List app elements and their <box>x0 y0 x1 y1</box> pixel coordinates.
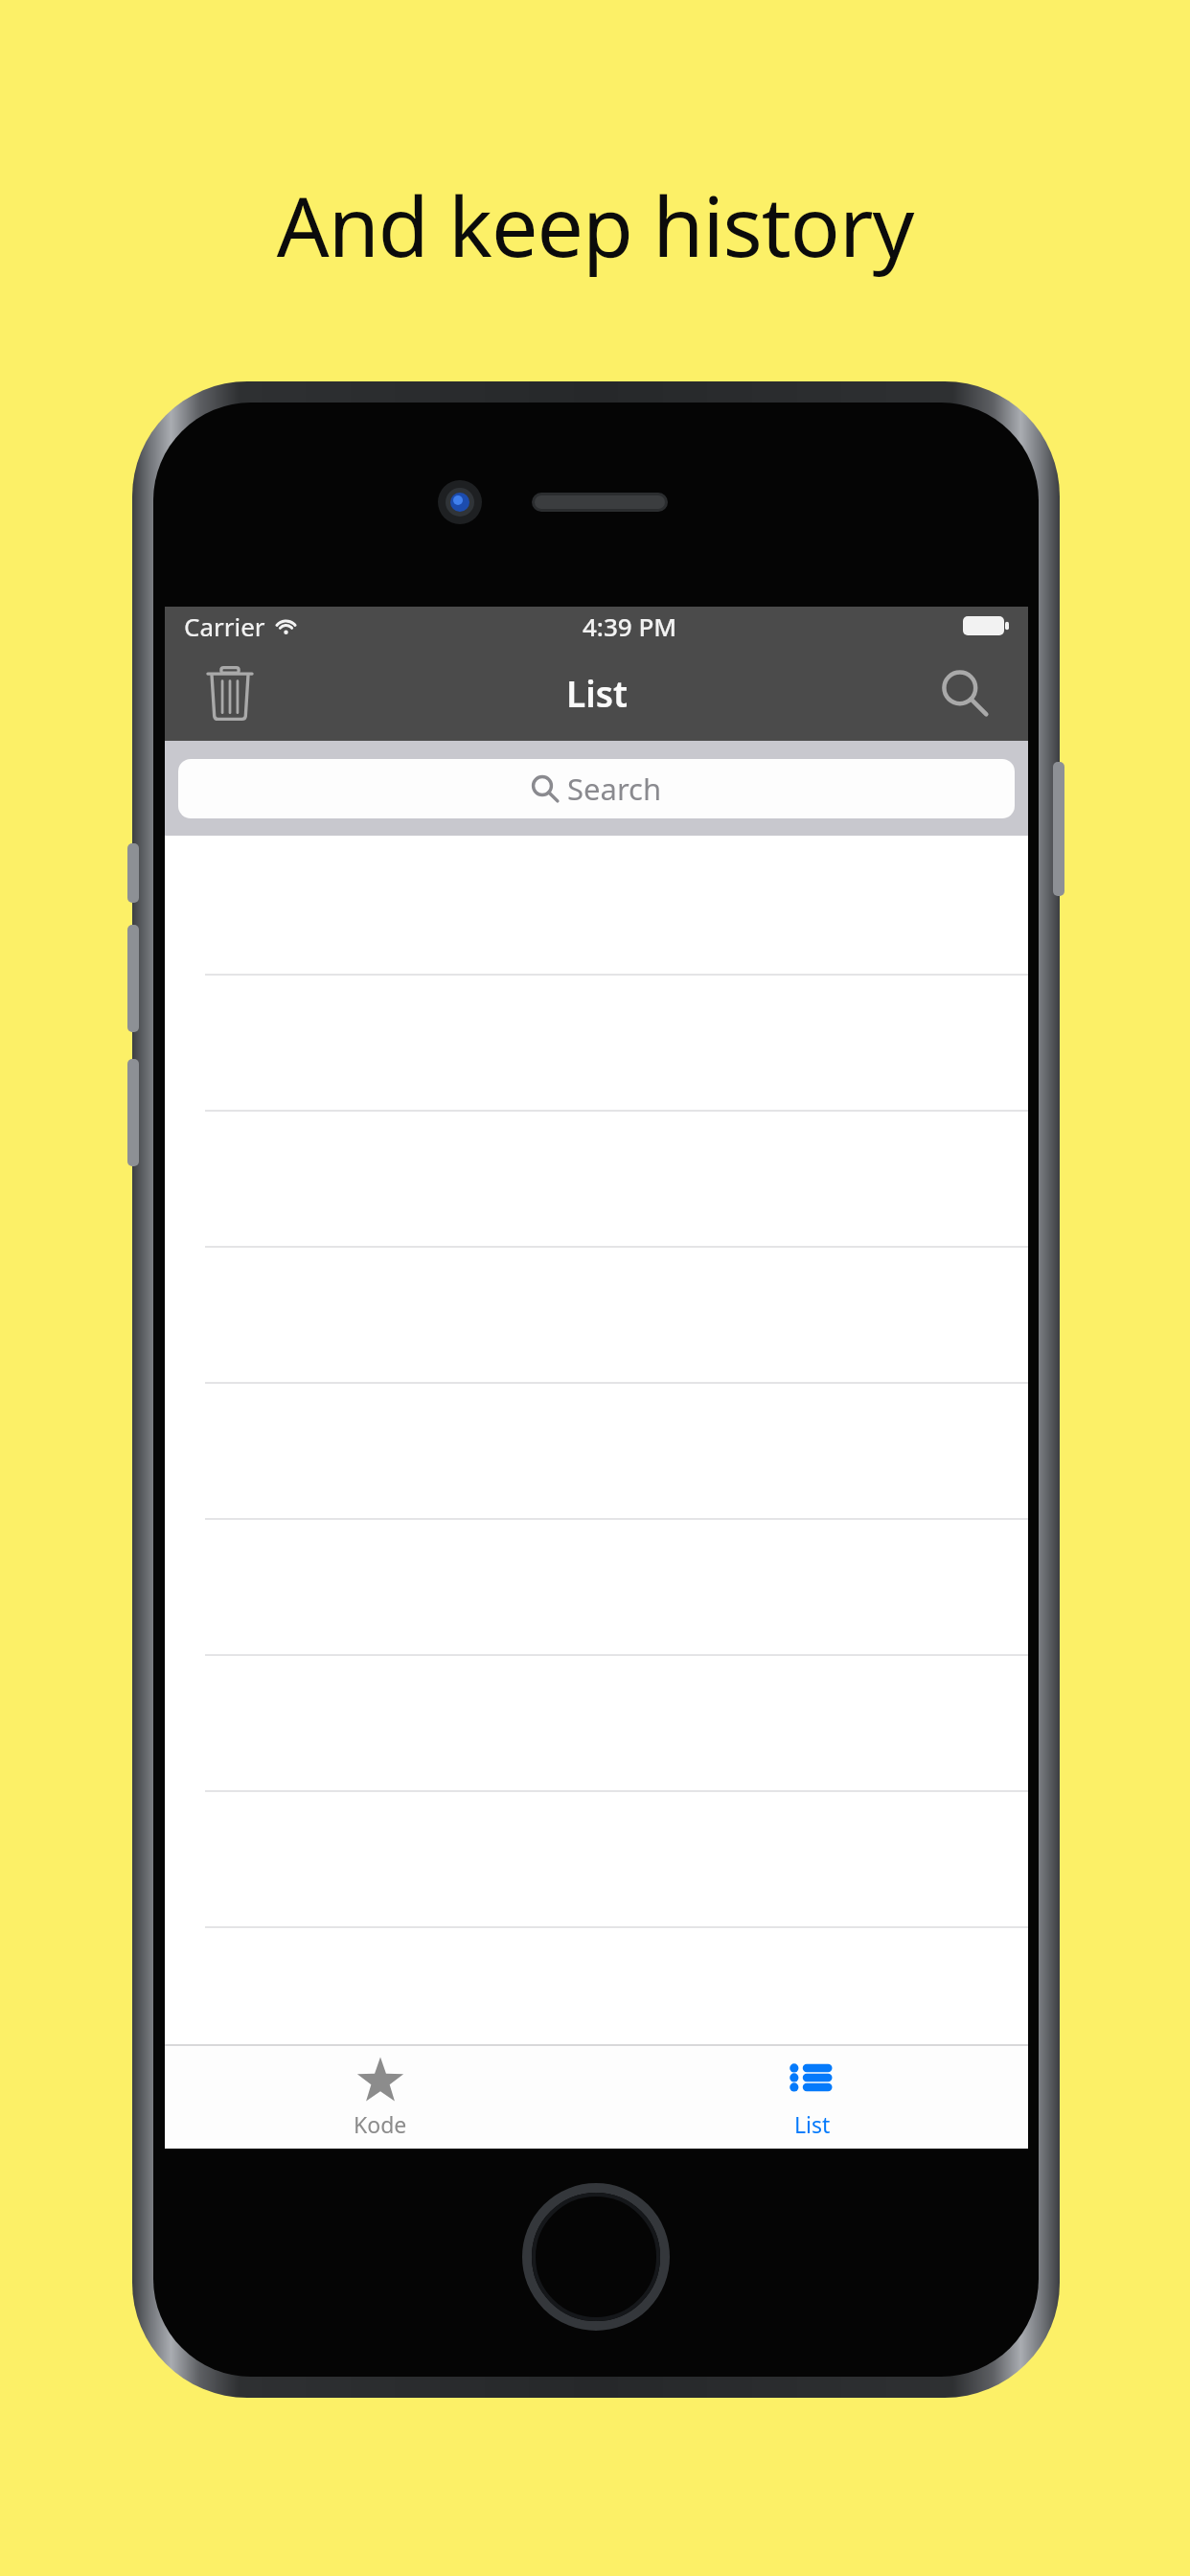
staticText: Search <box>567 769 662 809</box>
staticText: 4:39 PM <box>583 609 677 643</box>
staticText: List <box>794 2109 831 2139</box>
button[interactable]: Search <box>178 759 1015 818</box>
button[interactable]: Search <box>923 651 1007 735</box>
staticText: And keep history <box>0 169 1190 281</box>
staticText: Kode <box>354 2109 407 2139</box>
button[interactable]: List <box>596 2046 1028 2149</box>
staticText: Carrier <box>184 609 265 643</box>
staticText: List <box>566 669 628 717</box>
button[interactable]: Delete history <box>188 651 272 735</box>
button[interactable]: Kode <box>165 2046 596 2149</box>
